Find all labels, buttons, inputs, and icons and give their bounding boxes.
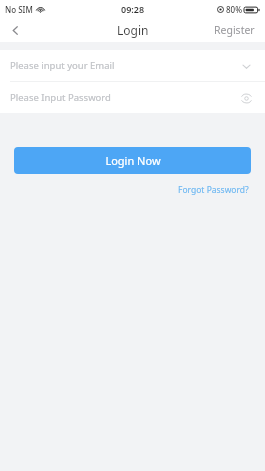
button[interactable]: Choose email — [235, 55, 257, 77]
button[interactable]: Back — [0, 18, 30, 42]
staticText: Login — [117, 22, 149, 38]
staticText: 80% — [226, 4, 242, 15]
button[interactable]: Register — [204, 19, 265, 41]
button[interactable]: Show password — [235, 87, 257, 109]
button[interactable]: Please Input Password — [0, 82, 265, 113]
staticText: No SIM — [5, 4, 33, 15]
staticText: 09:28 — [121, 3, 145, 15]
staticText: Register — [214, 23, 255, 37]
staticText: Please Input Password — [10, 91, 235, 104]
button[interactable]: Login Now — [14, 147, 251, 174]
staticText: Forgot Password? — [178, 184, 249, 196]
staticText: Please input your Email — [10, 59, 235, 72]
button[interactable]: Forgot Password? — [176, 182, 251, 198]
button[interactable]: Please input your Email — [0, 50, 265, 81]
staticText: Login Now — [105, 153, 161, 168]
